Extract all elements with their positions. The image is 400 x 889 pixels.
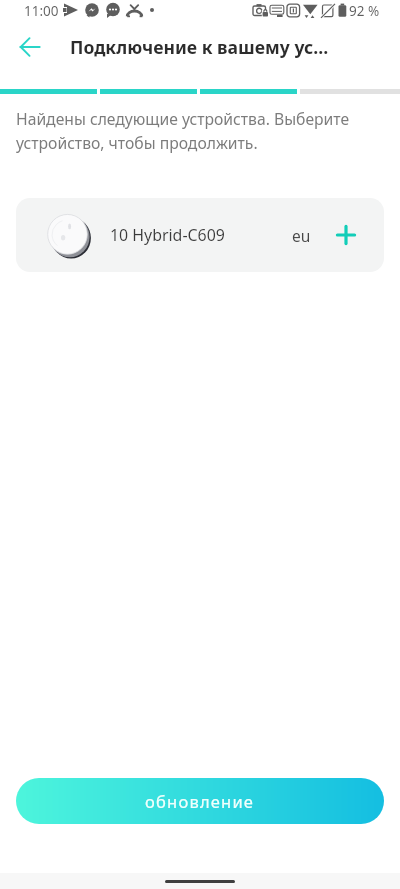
staticText: eu [292,225,311,246]
staticText: Найдены следующие устройства. Выберите у… [16,108,350,153]
staticText: 92 % [349,2,380,20]
button[interactable]: Back [10,27,50,67]
button[interactable]: Add device [326,215,366,255]
staticText: Подключение к вашему ус… [70,35,329,59]
staticText: 11:00 [24,2,59,20]
button[interactable]: 10 Hybrid-C609 [16,198,384,272]
button[interactable]: обновление [16,778,384,824]
staticText: обновление [145,790,255,812]
staticText: 10 Hybrid-C609 [110,224,225,246]
